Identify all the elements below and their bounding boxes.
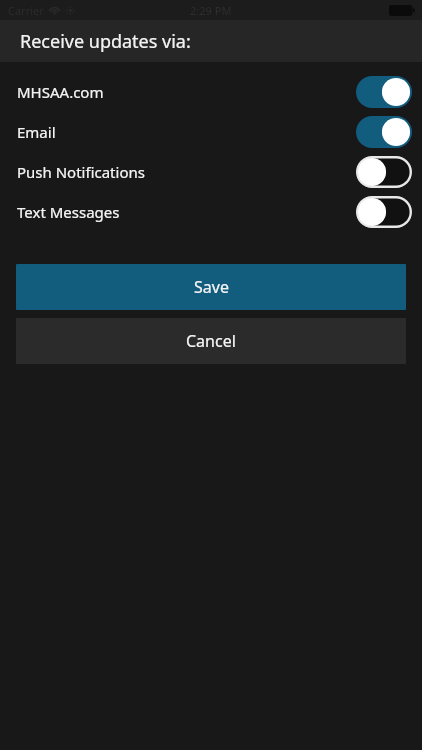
staticText: Save	[194, 276, 229, 298]
button[interactable]: Text Messages	[0, 192, 422, 232]
button[interactable]: Toggle Push Notifications	[356, 156, 412, 188]
staticText: Text Messages	[17, 202, 120, 222]
staticText: 2:29 PM	[190, 3, 232, 18]
button[interactable]: Email	[0, 112, 422, 152]
staticText: Email	[17, 122, 56, 142]
button[interactable]: Save	[16, 264, 406, 310]
staticText: Carrier	[8, 3, 44, 18]
button[interactable]: Toggle Text Messages	[356, 196, 412, 228]
button[interactable]: Cancel	[16, 318, 406, 364]
staticText: MHSAA.com	[17, 82, 104, 102]
button[interactable]: Toggle MHSAA.com	[356, 76, 412, 108]
staticText: Push Notifications	[17, 162, 145, 182]
button[interactable]: Toggle Email	[356, 116, 412, 148]
staticText: Cancel	[186, 330, 236, 352]
staticText: Receive updates via:	[20, 29, 191, 54]
button[interactable]: MHSAA.com	[0, 72, 422, 112]
button[interactable]: Push Notifications	[0, 152, 422, 192]
